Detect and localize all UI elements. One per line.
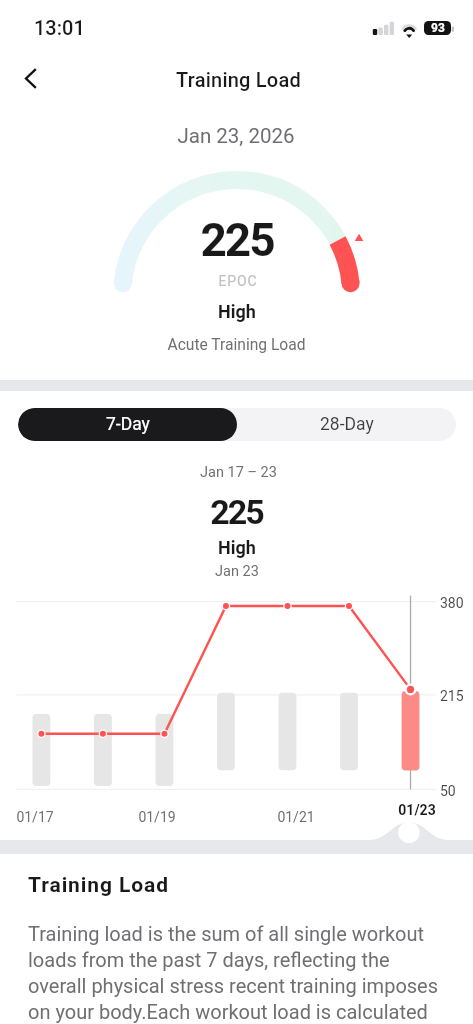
- staticText: Training Load: [28, 873, 169, 898]
- staticText: 225: [210, 492, 263, 532]
- button[interactable]: 28-Day: [237, 408, 456, 441]
- button[interactable]: 7-Day: [18, 408, 237, 441]
- staticText: 01/23: [398, 802, 436, 818]
- staticText: EPOC: [218, 273, 258, 289]
- staticText: Acute Training Load: [167, 336, 306, 354]
- staticText: Jan 23: [215, 563, 259, 580]
- staticText: 93: [431, 21, 445, 35]
- staticText: Training Load: [176, 68, 301, 91]
- staticText: Jan 17 – 23: [200, 464, 277, 481]
- staticText: 7-Day: [106, 414, 150, 435]
- staticText: 28-Day: [320, 414, 374, 435]
- staticText: Jan 23, 2026: [177, 124, 295, 148]
- staticText: 215: [440, 688, 464, 704]
- staticText: 01/19: [138, 809, 176, 825]
- staticText: 50: [440, 783, 456, 799]
- staticText: 380: [440, 595, 464, 611]
- button[interactable]: Back: [8, 56, 52, 100]
- staticText: High: [218, 537, 256, 558]
- staticText: 225: [200, 213, 274, 267]
- staticText: High: [218, 301, 256, 322]
- staticText: Training load is the sum of all single w…: [28, 922, 451, 1024]
- staticText: 01/21: [277, 809, 315, 825]
- staticText: 01/17: [16, 809, 54, 825]
- staticText: 13:01: [34, 16, 85, 39]
